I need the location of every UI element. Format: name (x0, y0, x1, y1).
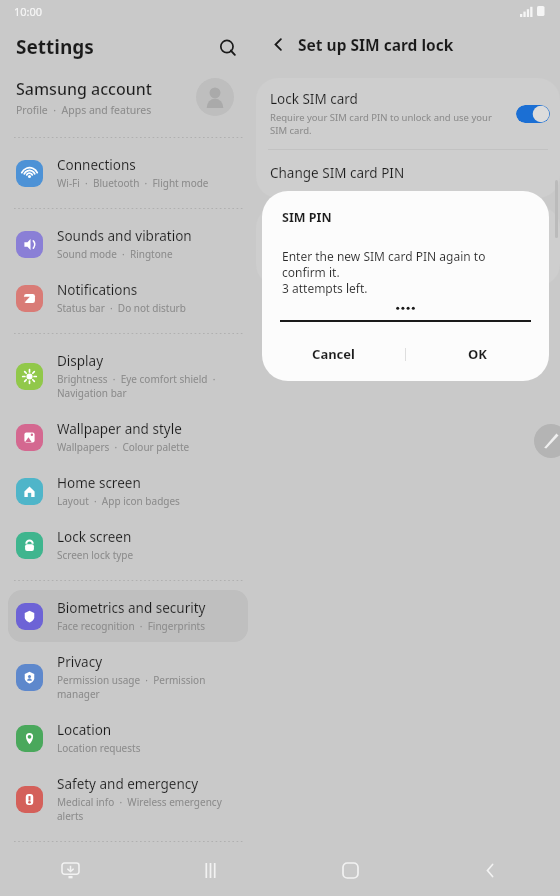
button[interactable]: Location (8, 712, 248, 764)
staticText: Location requests (57, 741, 141, 755)
button[interactable]: Search (210, 30, 246, 66)
staticText: Navigation bar (57, 386, 127, 400)
button[interactable]: Home (280, 845, 420, 896)
staticText: Wallpaper and style (57, 420, 182, 438)
staticText: Samsung account (16, 78, 152, 100)
staticText: Wallpapers · Colour palette (57, 440, 190, 454)
button[interactable]: Lock SIM card toggle (516, 105, 550, 123)
staticText: OK (468, 345, 487, 363)
staticText: Home screen (57, 474, 141, 492)
button[interactable]: Recents (140, 845, 280, 896)
staticText: Lock screen (57, 528, 132, 546)
staticText: Sound mode · Ringtone (57, 247, 173, 261)
button[interactable]: Biometrics and security (8, 590, 248, 642)
staticText: Location (57, 721, 112, 739)
button[interactable]: Notifications (8, 272, 248, 324)
button[interactable]: Hide keyboard (0, 845, 140, 896)
button[interactable]: Safety and emergency (8, 766, 248, 832)
staticText: Lock SIM card (270, 90, 358, 108)
button[interactable]: Back (262, 28, 294, 60)
staticText: Safety and emergency (57, 775, 199, 793)
staticText: Wi-Fi · Bluetooth · Flight mode (57, 176, 209, 190)
button[interactable]: Edit (534, 424, 560, 458)
button[interactable]: Samsung account (0, 66, 256, 128)
button[interactable]: Lock SIM card (256, 78, 560, 149)
staticText: Biometrics and security (57, 599, 206, 617)
button[interactable]: Display (8, 343, 248, 409)
staticText: Layout · App icon badges (57, 494, 180, 508)
button[interactable]: Cancel (262, 334, 405, 374)
staticText: Sounds and vibration (57, 227, 192, 245)
staticText: Change SIM card PIN (270, 164, 405, 182)
button[interactable]: OK (406, 334, 549, 374)
staticText: Set up SIM card lock (298, 34, 454, 55)
staticText: Display (57, 352, 104, 370)
staticText: SIM PIN (282, 209, 332, 226)
staticText: Screen lock type (57, 548, 134, 562)
staticText: Settings (16, 34, 94, 60)
button[interactable]: Privacy (8, 644, 248, 710)
button[interactable]: Change SIM card PIN (256, 150, 560, 198)
button[interactable]: Wallpaper and style (8, 411, 248, 463)
staticText: Medical info · Wireless emergency alerts (57, 795, 240, 823)
staticText: 3 attempts left. (282, 280, 368, 296)
staticText: Permission usage · Permission manager (57, 673, 240, 701)
staticText: Connections (57, 156, 136, 174)
staticText: Brightness · Eye comfort shield · (57, 372, 216, 386)
staticText: Status bar · Do not disturb (57, 301, 186, 315)
staticText: Face recognition · Fingerprints (57, 619, 205, 633)
button[interactable]: Lock screen (8, 519, 248, 571)
button[interactable]: Sounds and vibration (8, 218, 248, 270)
staticText: Notifications (57, 281, 138, 299)
staticText: Require your SIM card PIN to unlock and … (270, 111, 508, 137)
button[interactable]: Connections (8, 147, 248, 199)
button[interactable]: Home screen (8, 465, 248, 517)
staticText: 10:00 (14, 4, 43, 19)
staticText: Enter the new SIM card PIN again to conf… (282, 248, 529, 280)
staticText: Profile · Apps and features (16, 103, 152, 117)
staticText: Privacy (57, 653, 103, 671)
staticText: Cancel (312, 345, 355, 363)
